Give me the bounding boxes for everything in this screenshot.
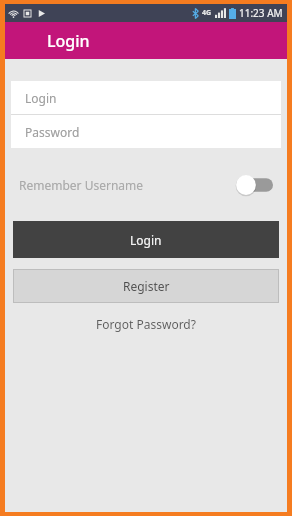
staticText: Login [25,90,57,106]
button[interactable]: Forgot Password? [5,312,287,336]
button[interactable]: Remember Username [5,168,287,202]
button[interactable]: Password [11,115,281,148]
button[interactable]: Login [11,81,281,114]
staticText: Forgot Password? [96,316,196,332]
staticText: Login [130,232,162,248]
staticText: 11:23 AM [239,6,283,20]
staticText: Login [47,30,90,52]
button[interactable]: Remember Username toggle [235,174,273,196]
staticText: Remember Username [19,177,144,193]
staticText: Password [25,124,80,140]
button[interactable]: Register [13,269,279,303]
staticText: 4G [202,8,212,18]
button[interactable]: Login [13,221,279,258]
staticText: Register [123,278,170,294]
